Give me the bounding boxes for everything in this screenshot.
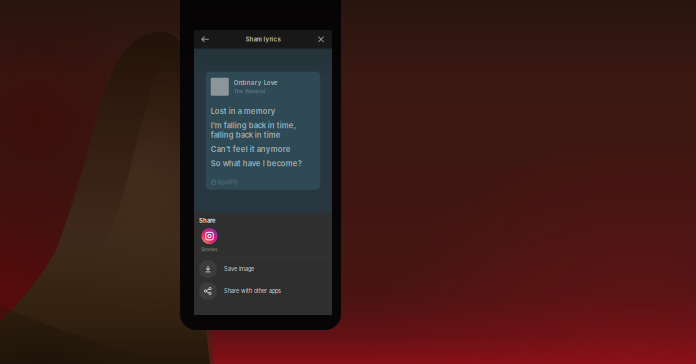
staticText: Spotify	[218, 179, 238, 186]
staticText: falling back in time	[211, 130, 281, 139]
staticText: Ordinary Love	[234, 79, 278, 86]
button[interactable]: Share with other apps	[194, 280, 332, 302]
staticText: So what have I become?	[211, 159, 302, 168]
button[interactable]: Close	[313, 30, 329, 48]
staticText: Can't feel it anymore	[211, 144, 291, 154]
button[interactable]: Back	[197, 30, 213, 48]
staticText: The Weeknd	[234, 88, 265, 94]
staticText: Lost in a memory	[211, 107, 276, 116]
staticText: Stories	[201, 247, 218, 252]
button[interactable]: Stories	[194, 224, 221, 252]
staticText: Save image	[224, 266, 254, 272]
staticText: Share lyrics	[245, 36, 280, 43]
staticText: I'm falling back in time,	[211, 121, 296, 130]
staticText: Share with other apps	[224, 288, 281, 294]
staticText: Share	[199, 217, 215, 224]
button[interactable]: Save image	[194, 258, 332, 280]
